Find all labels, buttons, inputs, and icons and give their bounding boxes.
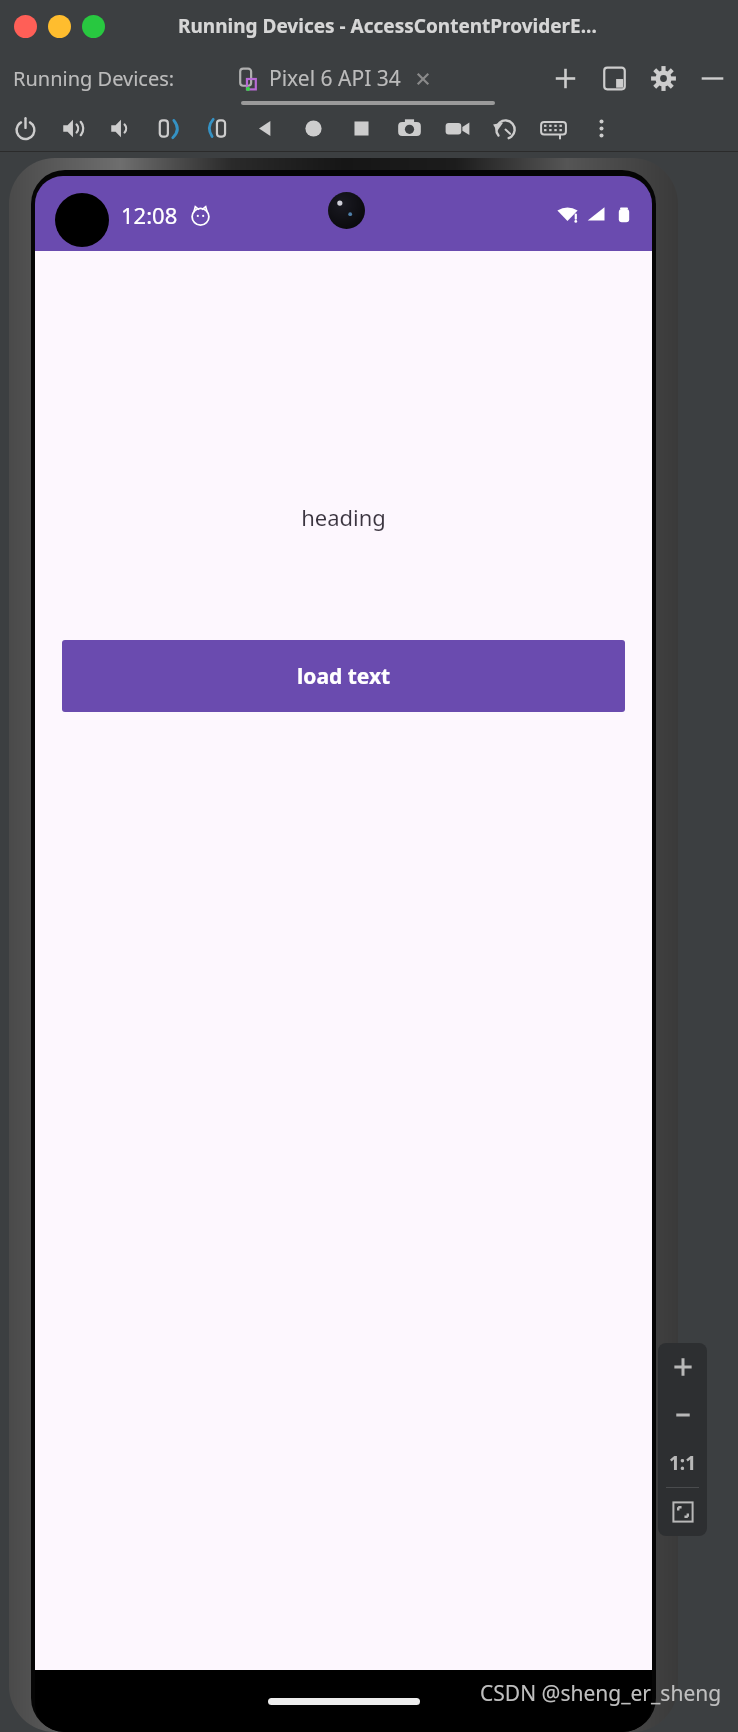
button[interactable] [48, 15, 71, 38]
button[interactable]: History [492, 115, 519, 142]
staticText: Running Devices - AccessContentProviderE… [178, 13, 597, 39]
button[interactable]: Fit to screen [658, 1488, 707, 1536]
button[interactable]: 1:1 [658, 1439, 707, 1487]
button[interactable]: Settings [650, 65, 677, 92]
button[interactable] [14, 15, 37, 38]
button[interactable]: Power [12, 115, 39, 142]
staticText: 12:08 [121, 200, 178, 230]
staticText: Pixel 6 API 34 [269, 64, 401, 93]
button[interactable]: Keyboard [540, 115, 567, 142]
button[interactable]: Volume up [60, 115, 87, 142]
staticText: load text [297, 662, 391, 691]
button[interactable]: Layout [601, 65, 628, 92]
button[interactable]: load text [62, 640, 625, 712]
button[interactable]: Add device [552, 65, 579, 92]
button[interactable]: Screenshot [396, 115, 423, 142]
button[interactable]: Minimize [699, 65, 726, 92]
button[interactable]: Zoom out [658, 1391, 707, 1439]
staticText: CSDN @sheng_er_sheng [480, 1679, 722, 1708]
staticText: Running Devices: [13, 65, 175, 92]
button[interactable]: Rotate right [204, 115, 231, 142]
button[interactable]: Close device tab [411, 67, 435, 91]
button[interactable]: Rotate left [156, 115, 183, 142]
button[interactable]: More [588, 115, 615, 142]
button[interactable]: Overview [348, 115, 375, 142]
button[interactable]: Back [252, 115, 279, 142]
button[interactable]: Zoom in [658, 1343, 707, 1391]
button[interactable] [82, 15, 105, 38]
staticText: heading [301, 502, 386, 532]
button[interactable]: Volume down [108, 115, 135, 142]
button[interactable]: Home [300, 115, 327, 142]
button[interactable] [235, 66, 261, 92]
staticText: 1:1 [669, 1450, 697, 1476]
button[interactable]: Record [444, 115, 471, 142]
